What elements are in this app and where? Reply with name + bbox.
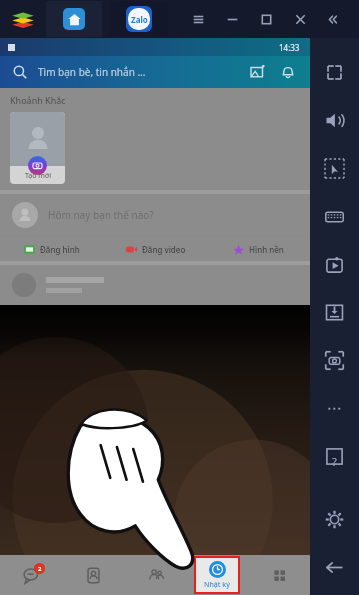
button[interactable]: Tạo mới (10, 112, 65, 184)
staticText: 2 (38, 565, 42, 573)
button[interactable]: Maximize (249, 2, 283, 36)
staticText: Tìm bạn bè, tin nhắn ... (38, 65, 146, 79)
button[interactable]: Fullscreen (310, 48, 359, 96)
button[interactable]: Volume (310, 96, 359, 144)
button[interactable]: Keyboard (310, 192, 359, 240)
button[interactable]: Đăng hình (0, 237, 104, 261)
button[interactable]: Screen record (310, 240, 359, 288)
button[interactable]: Settings (310, 495, 359, 543)
button[interactable]: Hình nền (207, 237, 310, 261)
button[interactable]: Minimize (215, 2, 249, 36)
staticText: Đăng hình (40, 244, 80, 255)
staticText: Hình nền (249, 244, 284, 255)
button[interactable]: Hôm nay bạn thế nào? (12, 194, 298, 236)
button[interactable]: Menu (181, 2, 215, 36)
button[interactable]: More (248, 555, 310, 595)
button[interactable]: Macro (310, 144, 359, 192)
staticText: Nhật ký (204, 580, 230, 590)
button[interactable]: Close (283, 2, 317, 36)
button[interactable]: Screenshot (310, 336, 359, 384)
staticText: Đăng video (142, 244, 186, 255)
staticText: Zalo (131, 14, 148, 25)
staticText: 14:33 (279, 42, 300, 53)
staticText: Khoảnh Khắc (10, 94, 66, 106)
button[interactable]: Search (10, 62, 30, 82)
button[interactable]: Notifications (276, 60, 300, 84)
button[interactable]: Help (310, 432, 359, 480)
button[interactable]: Groups (124, 555, 186, 595)
button[interactable]: Home (46, 1, 102, 37)
staticText: ? (332, 454, 337, 469)
button[interactable]: Zalo (110, 1, 168, 37)
button[interactable]: Back (310, 543, 359, 591)
button[interactable]: Nhật ký (196, 558, 238, 592)
button[interactable] (6, 2, 40, 36)
button[interactable]: Install APK (310, 288, 359, 336)
button[interactable]: Add photo (246, 60, 270, 84)
button[interactable]: Contacts (62, 555, 124, 595)
button[interactable]: Messages (0, 555, 62, 595)
button[interactable]: Collapse (317, 2, 351, 36)
button[interactable]: More (310, 384, 359, 432)
button[interactable] (12, 265, 298, 305)
staticText: Hôm nay bạn thế nào? (48, 208, 154, 222)
staticText: Tạo mới (25, 171, 51, 181)
button[interactable]: Đăng video (104, 237, 207, 261)
